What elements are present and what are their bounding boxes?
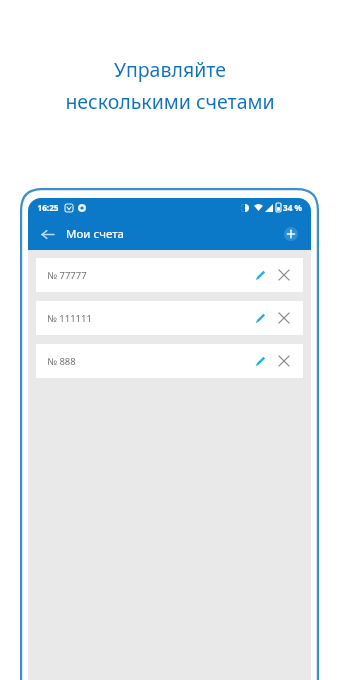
- staticText: Мои счета: [66, 226, 124, 242]
- staticText: Управляйте: [114, 56, 226, 83]
- button[interactable]: Back: [37, 224, 57, 244]
- button[interactable]: Edit: [249, 308, 269, 328]
- staticText: № 111111: [47, 312, 92, 325]
- button[interactable]: № 77777: [36, 258, 303, 292]
- staticText: 34 %: [283, 202, 302, 213]
- button[interactable]: № 111111: [36, 301, 303, 335]
- staticText: 16:25: [37, 202, 59, 213]
- button[interactable]: Edit: [249, 351, 269, 371]
- button[interactable]: Delete: [274, 351, 294, 371]
- button[interactable]: Edit: [249, 265, 269, 285]
- staticText: № 77777: [47, 269, 87, 282]
- staticText: № 888: [47, 355, 76, 368]
- button[interactable]: № 888: [36, 344, 303, 378]
- button[interactable]: Add account: [280, 223, 302, 245]
- staticText: несколькими счетами: [65, 88, 275, 115]
- button[interactable]: Delete: [274, 265, 294, 285]
- button[interactable]: Delete: [274, 308, 294, 328]
